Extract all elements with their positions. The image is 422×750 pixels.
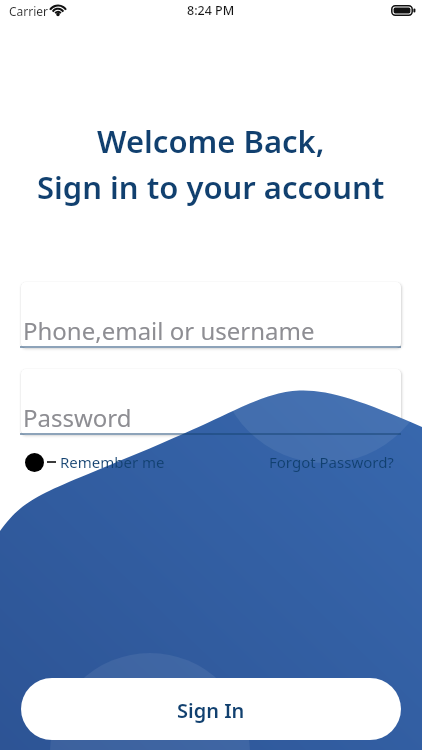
- staticText: Sign in to your account: [37, 166, 385, 208]
- other: Wifi signal: [50, 5, 66, 16]
- button[interactable]: Sign In: [21, 678, 401, 740]
- button[interactable]: Password: [20, 369, 401, 435]
- staticText: 8:24 PM: [187, 2, 235, 19]
- staticText: Welcome Back,: [97, 120, 325, 162]
- other: Battery full: [391, 5, 416, 16]
- staticText: Password: [23, 401, 132, 434]
- button[interactable]: Remember me: [25, 452, 165, 472]
- staticText: Sign In: [177, 697, 245, 724]
- staticText: Remember me: [60, 452, 165, 472]
- button[interactable]: Phone,email or username: [20, 282, 401, 348]
- staticText: Carrier: [9, 3, 49, 19]
- button[interactable]: Forgot Password?: [269, 452, 394, 472]
- staticText: Phone,email or username: [23, 314, 315, 347]
